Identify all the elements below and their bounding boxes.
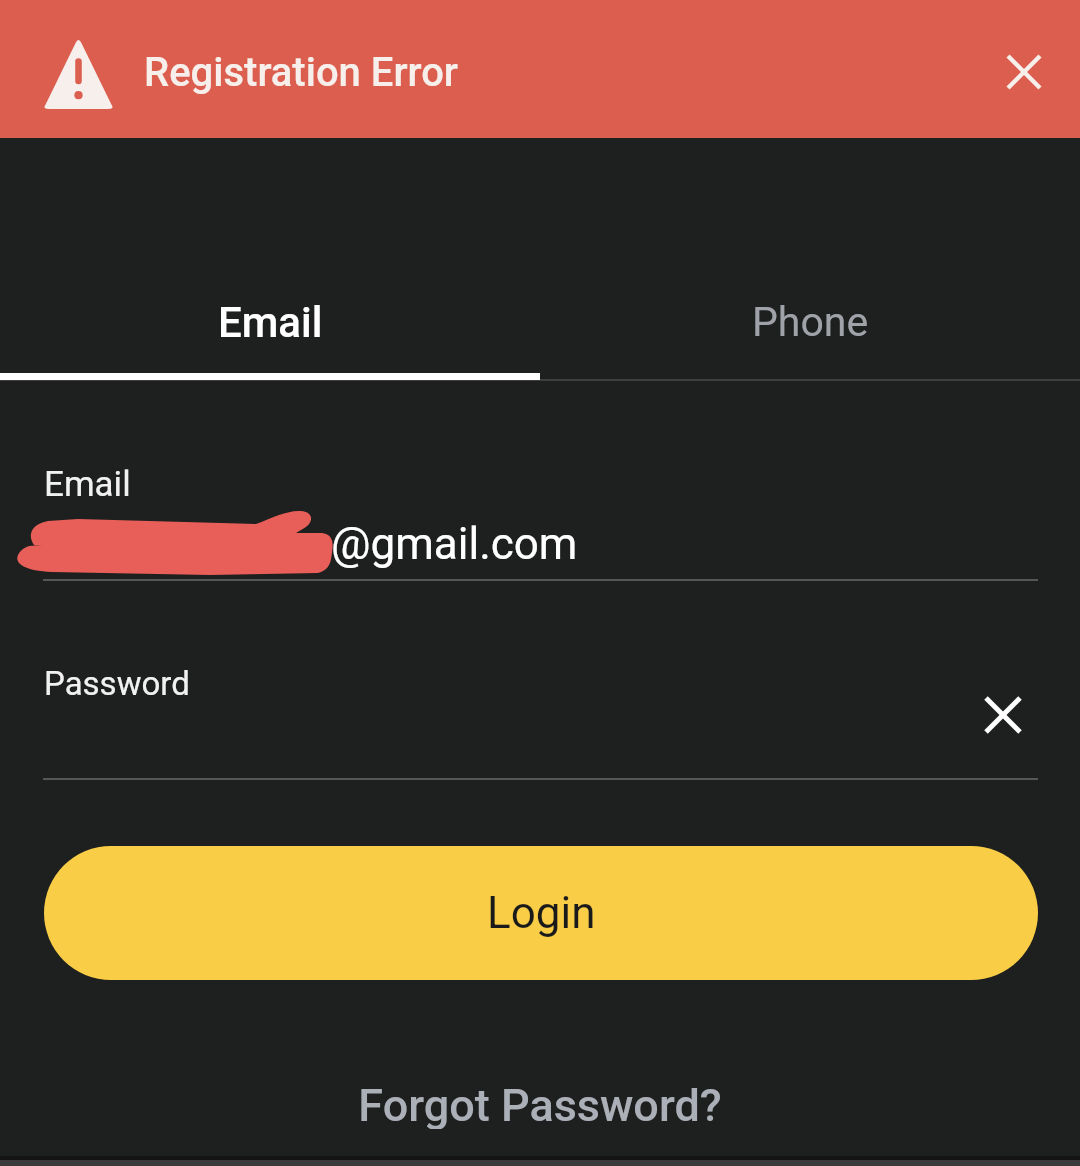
staticText: Password [44,664,190,703]
staticText: Login [487,887,596,939]
button[interactable]: Login [44,846,1038,980]
staticText: Registration Error [144,49,458,96]
button[interactable]: Email [0,285,540,359]
button[interactable]: Clear password [971,683,1035,747]
button[interactable]: Forgot Password? [344,1069,736,1139]
staticText: Forgot Password? [358,1079,722,1129]
button[interactable]: Phone [540,285,1080,359]
button[interactable]: Dismiss error [992,40,1056,104]
staticText: Email [44,464,131,505]
button[interactable] [43,648,1038,780]
button[interactable] [43,448,1038,581]
staticText: Email [218,298,323,347]
staticText: Phone [752,298,869,346]
staticText: @gmail.com [331,518,578,570]
